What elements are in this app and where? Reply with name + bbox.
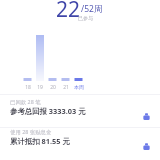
staticText: 累计抵扣 81.55 元 bbox=[10, 136, 70, 146]
staticText: 参考总回报 3333.03 元 bbox=[10, 106, 86, 116]
staticText: 21 bbox=[59, 84, 73, 91]
staticText: /52周 bbox=[81, 3, 103, 15]
staticText: 已参与 bbox=[78, 15, 93, 21]
staticText: 已回款 28 笔 bbox=[10, 98, 41, 105]
staticText: 19 bbox=[33, 84, 47, 91]
button[interactable]: 查看回款明细 bbox=[0, 94, 160, 120]
staticText: 20 bbox=[46, 84, 60, 91]
button[interactable]: 查看贴息金明细 bbox=[0, 124, 160, 150]
staticText: 使用 28 张贴息金 bbox=[10, 128, 52, 135]
staticText: 18 bbox=[21, 84, 35, 91]
staticText: 22 bbox=[56, 0, 81, 24]
staticText: 本周 bbox=[72, 84, 86, 90]
